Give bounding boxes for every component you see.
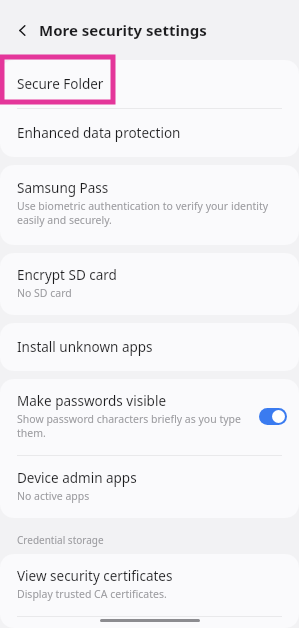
button[interactable]: Device admin apps: [0, 456, 299, 518]
button[interactable]: Secure Folder: [0, 60, 299, 108]
staticText: Display trusted CA certificates.: [17, 587, 167, 601]
staticText: More security settings: [39, 20, 207, 40]
staticText: Install unknown apps: [17, 338, 153, 356]
staticText: Samsung Pass: [17, 179, 109, 197]
staticText: View security certificates: [17, 567, 173, 585]
staticText: Enhanced data protection: [17, 124, 181, 142]
button[interactable]: Back: [8, 16, 36, 44]
staticText: Device admin apps: [17, 469, 137, 487]
button[interactable]: User certificates: [0, 617, 299, 628]
button[interactable]: Make passwords visible: [0, 379, 299, 455]
button[interactable]: Install unknown apps: [0, 323, 299, 371]
button[interactable]: Samsung Pass: [0, 165, 299, 245]
button[interactable]: Make passwords visible: [259, 408, 287, 425]
button[interactable]: Encrypt SD card: [0, 253, 299, 315]
staticText: Show password characters briefly as you …: [17, 412, 241, 440]
button[interactable]: View security certificates: [0, 554, 299, 616]
staticText: Credential storage: [17, 533, 104, 547]
staticText: Secure Folder: [17, 75, 104, 93]
staticText: Encrypt SD card: [17, 266, 117, 284]
staticText: No active apps: [17, 489, 90, 503]
staticText: Use biometric authentication to verify y…: [17, 199, 269, 227]
button[interactable]: Enhanced data protection: [0, 109, 299, 157]
staticText: No SD card: [17, 286, 72, 300]
staticText: Make passwords visible: [17, 392, 167, 410]
